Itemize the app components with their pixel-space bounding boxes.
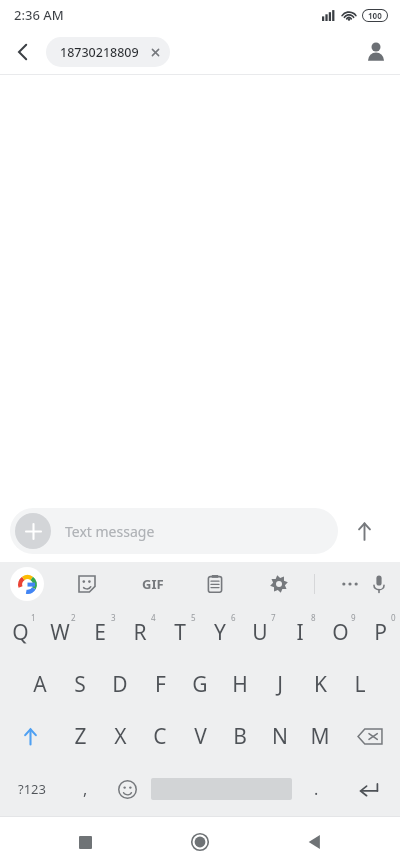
staticText: Z (74, 722, 87, 751)
staticText: H (232, 670, 248, 699)
button[interactable]: H (220, 658, 260, 710)
staticText: C (153, 722, 167, 751)
staticText: A (33, 670, 47, 699)
staticText: E (94, 618, 106, 647)
staticText: X (114, 722, 127, 751)
staticText: 7 (271, 612, 276, 623)
button[interactable]: Enter (337, 762, 400, 816)
staticText: 1 (31, 612, 36, 623)
button[interactable]: Google search (10, 567, 44, 601)
button[interactable]: Back (291, 818, 339, 866)
staticText: 2 (71, 612, 76, 623)
staticText: Q (12, 618, 29, 647)
button[interactable]: Space (148, 762, 295, 816)
button[interactable]: X (100, 710, 140, 762)
button[interactable]: Send (338, 505, 390, 557)
staticText: W (50, 618, 70, 647)
button[interactable]: S (60, 658, 100, 710)
button[interactable]: M (300, 710, 340, 762)
staticText: 6 (231, 612, 236, 623)
button[interactable]: Z (60, 710, 100, 762)
staticText: 0 (391, 612, 396, 623)
button[interactable]: F (140, 658, 180, 710)
staticText: GIF (142, 575, 164, 593)
button[interactable]: 18730218809 (46, 37, 170, 67)
staticText: L (354, 670, 366, 699)
button[interactable]: V (180, 710, 220, 762)
button[interactable]: Add attachment (15, 513, 51, 549)
staticText: G (192, 670, 208, 699)
button[interactable]: Home (176, 818, 224, 866)
staticText: B (233, 722, 247, 751)
button[interactable]: Recent apps (61, 818, 109, 866)
staticText: N (272, 722, 288, 751)
staticText: M (310, 722, 330, 751)
staticText: 100 (368, 10, 382, 21)
button[interactable]: Emoji (106, 762, 148, 816)
staticText: F (155, 670, 166, 699)
staticText: U (252, 618, 268, 647)
staticText: S (74, 670, 86, 699)
button[interactable]: J (260, 658, 300, 710)
staticText: 18730218809 (60, 44, 139, 61)
staticText: P (374, 618, 387, 647)
button[interactable]: T (160, 606, 200, 658)
staticText: , (83, 778, 88, 800)
staticText: 9 (351, 612, 356, 623)
staticText: V (194, 722, 207, 751)
staticText: K (314, 670, 327, 699)
button[interactable]: GIF (136, 567, 170, 601)
staticText: D (112, 670, 128, 699)
staticText: T (174, 618, 186, 647)
button[interactable]: ?123 (0, 762, 64, 816)
button[interactable]: More options (333, 567, 367, 601)
button[interactable]: Backspace (340, 710, 400, 762)
staticText: ?123 (18, 780, 46, 798)
staticText: R (133, 618, 147, 647)
staticText: I (296, 618, 304, 647)
button[interactable]: Settings (262, 567, 296, 601)
staticText: 3 (111, 612, 116, 623)
button[interactable]: A (20, 658, 60, 710)
staticText: Text message (65, 522, 155, 541)
button[interactable]: U (240, 606, 280, 658)
staticText: 4 (151, 612, 156, 623)
button[interactable]: Stickers (70, 567, 104, 601)
button[interactable]: C (140, 710, 180, 762)
button[interactable]: L (340, 658, 380, 710)
staticText: J (277, 670, 283, 699)
button[interactable]: R (120, 606, 160, 658)
button[interactable]: , (64, 762, 106, 816)
button[interactable]: E (80, 606, 120, 658)
button[interactable]: Shift (0, 710, 60, 762)
button[interactable]: D (100, 658, 140, 710)
button[interactable]: G (180, 658, 220, 710)
button[interactable]: Voice input (367, 567, 390, 601)
button[interactable]: . (295, 762, 337, 816)
button[interactable]: W (40, 606, 80, 658)
button[interactable]: Q (0, 606, 40, 658)
button[interactable]: P (360, 606, 400, 658)
button[interactable]: Add attachment (10, 508, 338, 554)
button[interactable]: Contact details (352, 30, 400, 74)
button[interactable]: O (320, 606, 360, 658)
button[interactable]: Clipboard (198, 567, 232, 601)
staticText: 2:36 AM (14, 6, 64, 24)
staticText: 5 (191, 612, 196, 623)
button[interactable]: B (220, 710, 260, 762)
staticText: Y (214, 618, 226, 647)
staticText: . (314, 778, 319, 800)
button[interactable]: Back (0, 30, 46, 74)
staticText: O (332, 618, 349, 647)
button[interactable]: I (280, 606, 320, 658)
button[interactable]: K (300, 658, 340, 710)
staticText: 8 (311, 612, 316, 623)
button[interactable]: N (260, 710, 300, 762)
button[interactable]: Y (200, 606, 240, 658)
